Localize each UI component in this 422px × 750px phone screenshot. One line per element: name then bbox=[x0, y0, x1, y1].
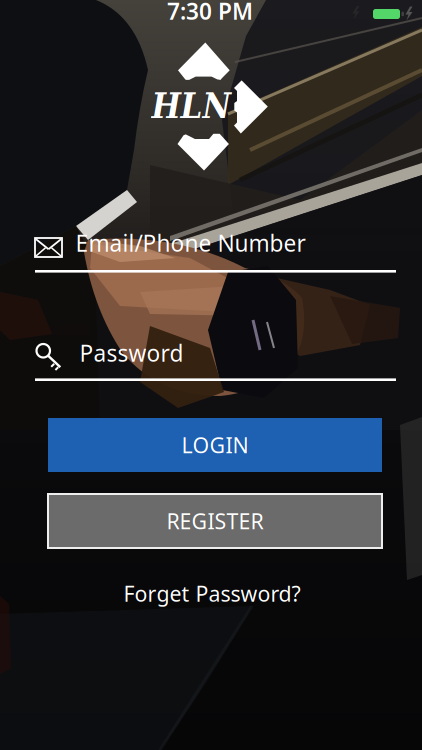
staticText: 7:30 PM bbox=[167, 0, 253, 26]
button[interactable]: LOGIN bbox=[48, 418, 382, 472]
button[interactable]: Forget Password? bbox=[123, 579, 300, 608]
staticText: REGISTER bbox=[166, 507, 263, 535]
staticText: Forget Password? bbox=[123, 579, 300, 608]
staticText: LOGIN bbox=[181, 431, 248, 459]
staticText: Email/Phone Number bbox=[75, 228, 305, 258]
button[interactable]: REGISTER bbox=[48, 494, 382, 548]
staticText: Password bbox=[79, 338, 183, 368]
staticText: HLN bbox=[151, 86, 231, 126]
